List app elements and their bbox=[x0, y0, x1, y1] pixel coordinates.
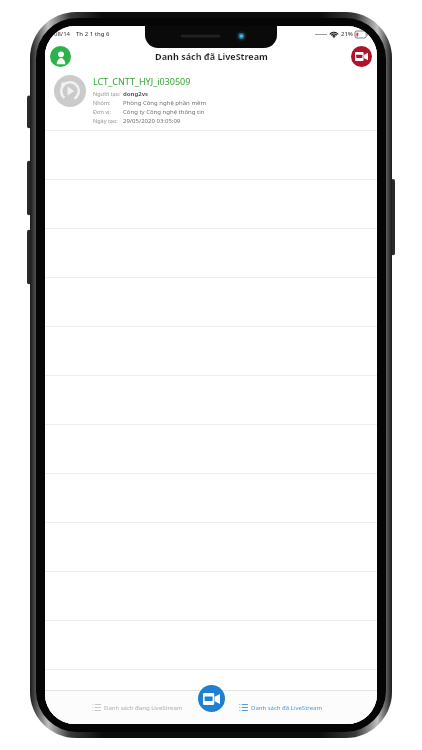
button[interactable]: Danh sách đã LiveStream bbox=[237, 700, 325, 715]
staticText: Danh sách đã LiveStream bbox=[251, 704, 323, 712]
staticText: LCT_CNTT_HYJ_i030509 bbox=[93, 75, 191, 87]
button[interactable]: Bắt đầu LiveStream bbox=[351, 46, 372, 67]
staticText: Danh sách đã LiveStream bbox=[155, 50, 268, 62]
staticText: Người tạo: bbox=[93, 90, 121, 97]
button[interactable]: Tài khoản bbox=[50, 46, 71, 67]
button[interactable]: Bắt đầu phát trực tiếp bbox=[198, 685, 225, 712]
button[interactable]: LCT_CNTT_HYJ_i030509 bbox=[45, 70, 377, 131]
staticText: Ngày tạo: bbox=[93, 117, 118, 124]
staticText: Đơn vị: bbox=[93, 108, 111, 115]
staticText: Th 2 1 thg 6 bbox=[76, 30, 110, 38]
button[interactable]: Danh sách đang LiveStream bbox=[90, 700, 185, 715]
staticText: dong2vs bbox=[123, 90, 149, 98]
staticText: Công ty Công nghệ thông tin bbox=[123, 108, 205, 116]
staticText: Phòng Công nghệ phần mềm bbox=[123, 99, 206, 107]
staticText: 08/14 bbox=[54, 30, 71, 38]
staticText: Nhóm: bbox=[93, 99, 111, 106]
staticText: 21% bbox=[341, 30, 353, 38]
staticText: Danh sách đang LiveStream bbox=[104, 704, 183, 712]
staticText: 29/05/2020 03:05:09 bbox=[123, 117, 181, 125]
